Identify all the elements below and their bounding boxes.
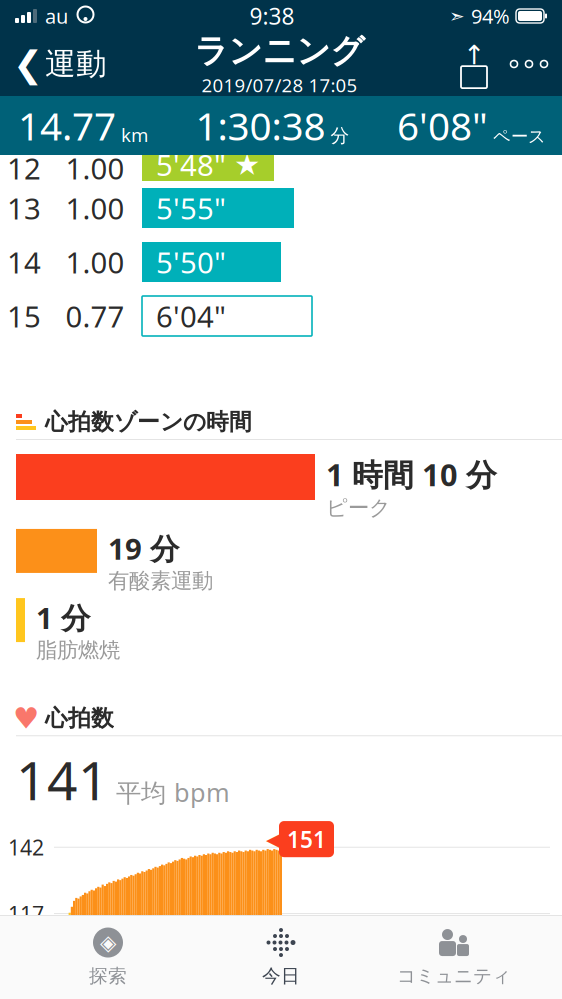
staticText: 117 — [8, 899, 44, 928]
staticText: ★ — [234, 148, 260, 181]
staticText: km — [121, 122, 148, 147]
staticText: 94% — [471, 3, 510, 29]
staticText: 5'48" — [156, 145, 226, 184]
button[interactable]: コミュニティ — [389, 921, 519, 993]
staticText: ペース — [493, 126, 546, 147]
staticText: 探索 — [89, 964, 127, 987]
staticText: 151 — [287, 824, 326, 854]
staticText: 心拍数ゾーンの時間 — [45, 408, 252, 436]
staticText: 14 — [7, 242, 41, 281]
staticText: 心拍数 — [45, 704, 114, 732]
staticText: 15 — [7, 296, 41, 335]
button[interactable]: 共有 — [452, 40, 496, 88]
staticText: 1.00 — [65, 148, 124, 187]
button[interactable]: ❮ — [0, 36, 107, 92]
staticText: ピーク — [326, 495, 391, 521]
staticText: 5'55" — [156, 188, 226, 227]
staticText: 9:38 — [249, 1, 294, 31]
staticText: 運動 — [45, 45, 107, 83]
staticText: ♥ — [13, 702, 39, 735]
staticText: 14.77 — [18, 100, 116, 151]
staticText: 分 — [330, 124, 349, 147]
staticText: ❮ — [13, 44, 43, 84]
button[interactable]: ◈ — [43, 921, 173, 993]
staticText: 1:30:38 — [195, 100, 325, 151]
staticText: 1.00 — [65, 188, 124, 227]
staticText: 19 分 — [108, 529, 179, 568]
staticText: 5'50" — [156, 242, 226, 281]
staticText: 6'04" — [156, 296, 226, 335]
staticText: ◀ — [266, 826, 283, 852]
staticText: ↑ — [463, 40, 485, 70]
staticText: 1.00 — [65, 242, 124, 281]
staticText: ➣ — [449, 5, 465, 27]
staticText: 12 — [7, 148, 41, 187]
staticText: 141 — [16, 744, 109, 815]
staticText: 有酸素運動 — [108, 568, 213, 594]
staticText: 0.77 — [65, 296, 124, 335]
button[interactable]: その他 — [496, 40, 562, 88]
staticText: 1 時間 10 分 — [326, 454, 497, 495]
staticText: au — [45, 3, 68, 29]
staticText: 1 分 — [36, 598, 90, 637]
staticText: 今日 — [262, 964, 300, 987]
staticText: 6'08" — [397, 100, 488, 151]
staticText: ランニング — [194, 31, 364, 71]
staticText: ◈ — [100, 930, 116, 955]
staticText: コミュニティ — [397, 964, 511, 987]
staticText: 脂肪燃焼 — [36, 637, 120, 663]
staticText: 2019/07/28 17:05 — [201, 73, 357, 97]
staticText: 平均 bpm — [116, 775, 230, 809]
staticText: 13 — [7, 188, 41, 227]
button[interactable]: 今日 — [216, 921, 346, 993]
staticText: 142 — [8, 833, 44, 861]
